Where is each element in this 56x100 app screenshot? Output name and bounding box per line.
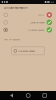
staticText: 9:41 [50,1,54,3]
staticText: Unit of measure [4,38,20,41]
staticText: Location based [30,21,44,24]
button[interactable]: GPS [0,11,56,19]
button[interactable]: Calibrate sensor [11,47,44,55]
staticText: Pressure sensor [28,28,44,31]
button[interactable]: Back [7,91,17,100]
button[interactable]: Recent apps [40,91,49,100]
button[interactable]: Home [23,91,33,100]
button[interactable]: Location based [0,19,56,26]
button[interactable]: Pressure sensor [0,26,56,34]
staticText: Calibrate sensor [18,49,35,52]
staticText: Altitude estimation [4,6,27,9]
staticText: GPS [38,13,44,16]
